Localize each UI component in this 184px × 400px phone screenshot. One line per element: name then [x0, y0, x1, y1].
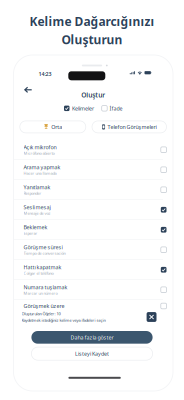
staticText: Micrófono abierto: [23, 151, 54, 156]
button[interactable]: Orta: [20, 121, 86, 133]
staticText: Oluşturun: [61, 32, 122, 48]
button[interactable]: Hattı kapatmak: [13, 260, 173, 280]
staticText: Arama yapmak: [23, 164, 60, 171]
button[interactable]: Numara tuşlamak: [13, 280, 173, 300]
staticText: Daha fazla göster: [70, 334, 113, 341]
staticText: Kelimeler: [72, 105, 94, 112]
button[interactable]: Görüşmek üzere: [13, 300, 173, 312]
button[interactable]: Yanıtlamak: [13, 180, 173, 200]
button[interactable]: Listeyi Kaydet: [31, 347, 153, 360]
staticText: Orta: [51, 123, 62, 130]
staticText: Kaydetmek istediğiniz kelime veya ifadel…: [21, 318, 105, 323]
staticText: İfade: [110, 105, 123, 112]
staticText: Görüşme süresi: [23, 244, 62, 251]
button[interactable]: Sesli mesaj: [13, 200, 173, 220]
staticText: Telefon Görüşmeleri: [107, 123, 156, 130]
staticText: 14:23: [38, 70, 51, 77]
staticText: Görüşmek üzere: [23, 302, 64, 310]
button[interactable]: İfade: [102, 105, 123, 112]
staticText: Tiempo de conversación: [23, 251, 65, 256]
button[interactable]: Görüşme süresi: [13, 240, 173, 260]
staticText: Colgar el teléfono: [23, 271, 53, 276]
button[interactable]: Arama yapmak: [13, 160, 173, 180]
button[interactable]: Beklemek: [13, 220, 173, 240]
button[interactable]: Kapat: [147, 312, 156, 322]
staticText: Yanıtlamak: [23, 184, 50, 191]
staticText: Oluşturulan Öğeler: 10: [21, 311, 60, 316]
staticText: Sesli mesaj: [23, 204, 50, 211]
staticText: Beklemek: [23, 224, 47, 231]
staticText: Marcar un número: [23, 291, 57, 296]
button[interactable]: Kelimeler: [64, 105, 94, 112]
button[interactable]: Daha fazla göster: [31, 331, 153, 344]
staticText: Hacer una llamada: [23, 171, 56, 176]
staticText: Oluştur: [81, 91, 105, 99]
staticText: Esperar: [23, 231, 37, 236]
staticText: Kelime Dağarcığınızı: [29, 13, 154, 29]
staticText: Responder: [23, 191, 41, 196]
button[interactable]: Geri: [21, 84, 34, 95]
button[interactable]: Açık mikrofon: [13, 140, 173, 160]
button[interactable]: Telefon Görüşmeleri: [92, 121, 166, 133]
staticText: Listeyi Kaydet: [75, 350, 109, 357]
staticText: Mensaje de voz: [23, 211, 50, 216]
staticText: Açık mikrofon: [23, 144, 56, 151]
staticText: Numara tuşlamak: [23, 284, 67, 291]
staticText: Hattı kapatmak: [23, 264, 61, 271]
